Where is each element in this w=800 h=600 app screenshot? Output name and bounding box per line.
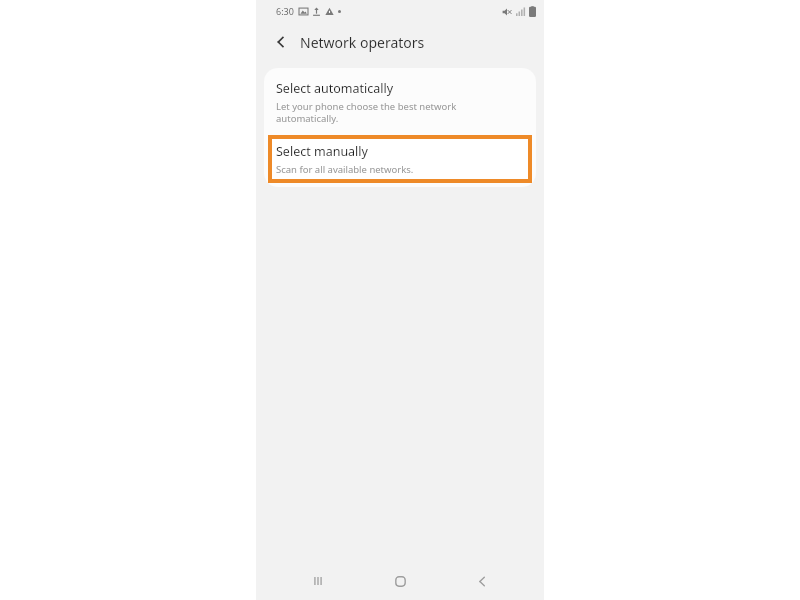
staticText: Network operators xyxy=(300,33,425,52)
button[interactable]: Back xyxy=(268,29,294,55)
staticText: 6:30 xyxy=(276,5,294,17)
button[interactable]: Back xyxy=(462,562,502,600)
button[interactable]: Select manually xyxy=(268,135,532,183)
staticText: Scan for all available networks. xyxy=(276,163,414,176)
button[interactable]: Recent apps xyxy=(298,562,338,600)
staticText: Select automatically xyxy=(276,80,394,97)
button[interactable]: Home xyxy=(380,562,420,600)
staticText: Let your phone choose the best network a… xyxy=(276,100,457,125)
button[interactable]: Select automatically xyxy=(264,68,536,135)
staticText: Select manually xyxy=(276,143,368,160)
